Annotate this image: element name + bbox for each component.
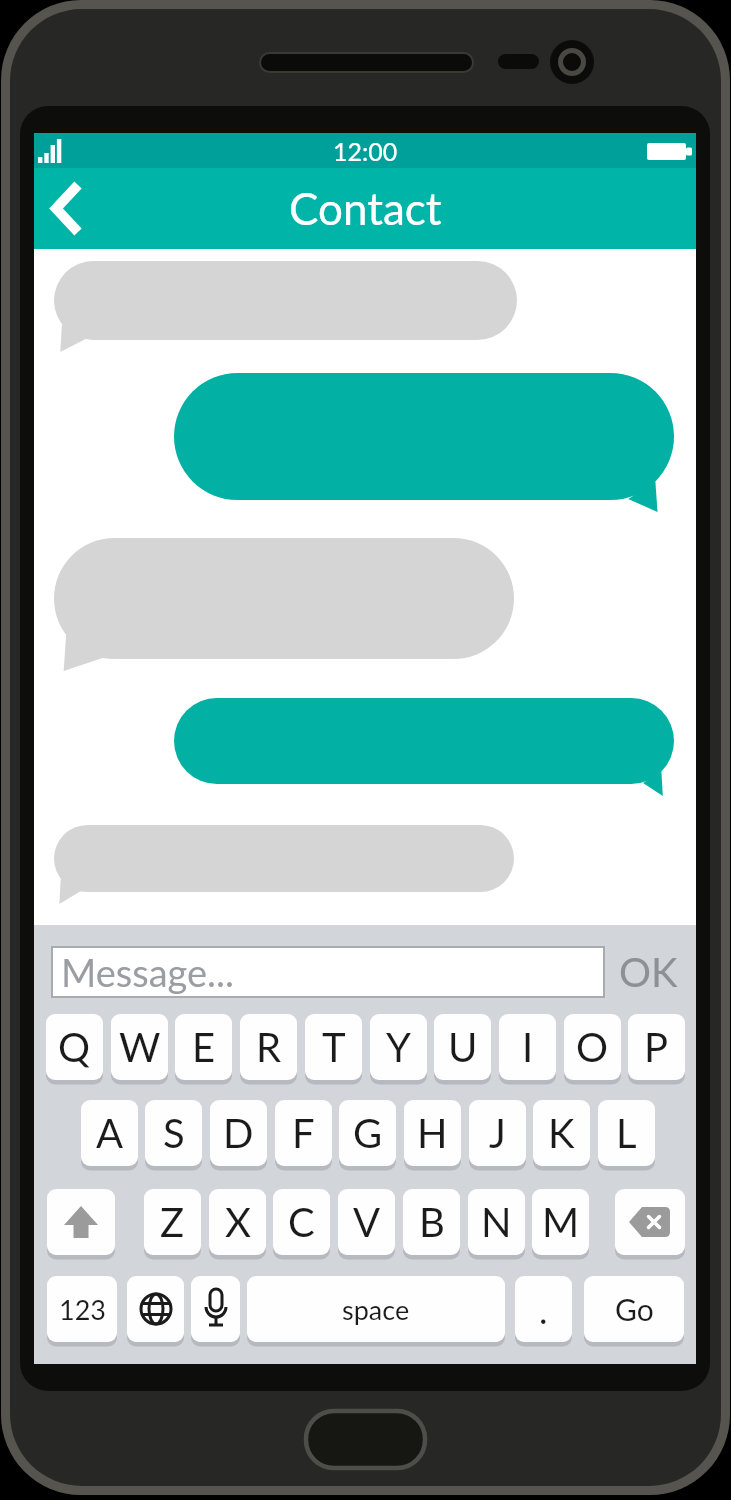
staticText: V	[353, 1198, 381, 1246]
staticText: D	[223, 1109, 254, 1157]
staticText: U	[448, 1023, 478, 1071]
staticText: .	[539, 1288, 548, 1331]
button[interactable]: Z	[144, 1189, 201, 1255]
button[interactable]: C	[273, 1189, 330, 1255]
button[interactable]: A	[81, 1100, 138, 1166]
button[interactable]: space	[247, 1276, 505, 1342]
staticText: C	[288, 1198, 315, 1246]
button[interactable]: I	[499, 1014, 556, 1080]
staticText: Go	[615, 1291, 654, 1327]
button[interactable]	[127, 1276, 184, 1342]
button[interactable]: Go	[584, 1276, 684, 1342]
button[interactable]: S	[145, 1100, 202, 1166]
staticText: R	[256, 1023, 282, 1071]
button[interactable]: T	[305, 1014, 362, 1080]
button[interactable]: G	[339, 1100, 396, 1166]
button[interactable]	[47, 1189, 115, 1255]
staticText: G	[353, 1109, 383, 1157]
button[interactable]: OK	[606, 946, 690, 998]
staticText: H	[417, 1109, 448, 1157]
button[interactable]: U	[434, 1014, 491, 1080]
button[interactable]: 123	[47, 1276, 117, 1342]
staticText: I	[522, 1023, 534, 1071]
staticText: E	[192, 1023, 216, 1071]
staticText: S	[163, 1109, 185, 1157]
button[interactable]: K	[533, 1100, 590, 1166]
staticText: F	[292, 1109, 315, 1157]
staticText: Q	[58, 1023, 91, 1071]
staticText: 12:00	[333, 136, 398, 166]
button[interactable]: Message...	[51, 946, 605, 998]
staticText: 123	[59, 1293, 106, 1325]
button[interactable]: J	[469, 1100, 526, 1166]
staticText: A	[96, 1109, 124, 1157]
staticText: Z	[160, 1198, 185, 1246]
button[interactable]: E	[175, 1014, 232, 1080]
staticText: OK	[619, 948, 678, 996]
staticText: P	[644, 1023, 669, 1071]
button[interactable]: B	[403, 1189, 460, 1255]
button[interactable]: V	[338, 1189, 395, 1255]
button[interactable]: .	[515, 1276, 572, 1342]
button[interactable]: F	[275, 1100, 332, 1166]
button[interactable]: R	[240, 1014, 297, 1080]
button[interactable]: Y	[370, 1014, 427, 1080]
button[interactable]: H	[404, 1100, 461, 1166]
button[interactable]	[34, 168, 124, 249]
button[interactable]: M	[532, 1189, 589, 1255]
button[interactable]: Q	[46, 1014, 103, 1080]
staticText: N	[481, 1198, 512, 1246]
staticText: Message...	[61, 949, 234, 995]
button[interactable]: D	[210, 1100, 267, 1166]
button[interactable]: N	[468, 1189, 525, 1255]
staticText: Contact	[289, 182, 442, 235]
staticText: W	[119, 1023, 161, 1071]
button[interactable]: L	[598, 1100, 655, 1166]
staticText: X	[225, 1198, 251, 1246]
button[interactable]: P	[628, 1014, 685, 1080]
button[interactable]: W	[111, 1014, 168, 1080]
staticText: Y	[386, 1023, 411, 1071]
button[interactable]	[191, 1276, 240, 1342]
button[interactable]: O	[564, 1014, 621, 1080]
button[interactable]	[615, 1189, 685, 1255]
button[interactable]: X	[209, 1189, 266, 1255]
staticText: L	[616, 1109, 637, 1157]
staticText: K	[548, 1109, 575, 1157]
staticText: M	[542, 1198, 580, 1246]
staticText: B	[419, 1198, 445, 1246]
staticText: J	[489, 1109, 506, 1157]
staticText: O	[576, 1023, 609, 1071]
staticText: space	[342, 1293, 410, 1325]
staticText: T	[322, 1023, 346, 1071]
